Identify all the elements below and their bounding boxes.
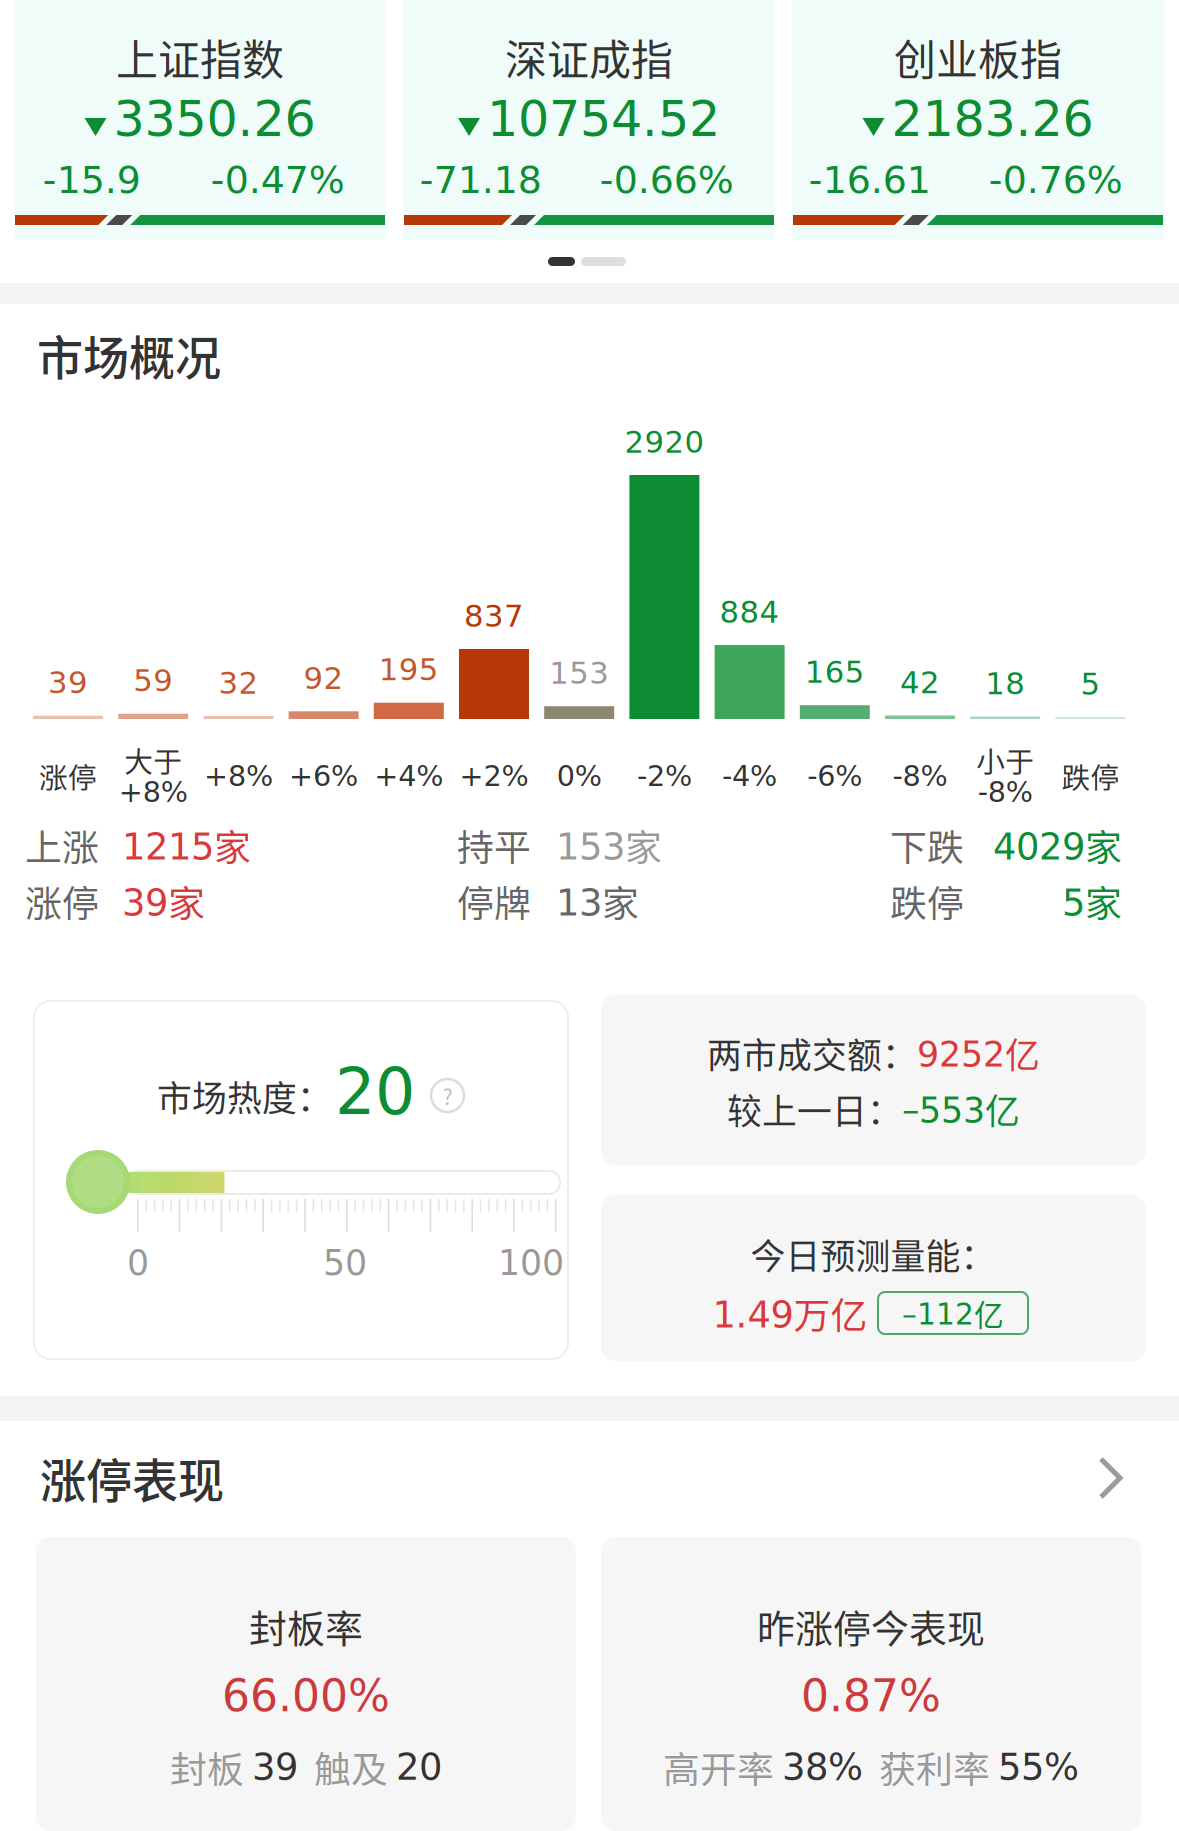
- staticText: 153家: [556, 818, 662, 872]
- staticText: +8%: [204, 759, 273, 793]
- staticText: 上涨: [25, 818, 99, 872]
- staticText: 10754.52: [487, 90, 720, 148]
- staticText: 4029家: [993, 818, 1122, 872]
- staticText: 0%: [557, 759, 602, 793]
- staticText: +2%: [459, 759, 528, 793]
- staticText: 5: [1080, 666, 1100, 702]
- button[interactable]: 市场热度：: [0, 0, 1179, 1831]
- staticText: 高开率: [663, 1740, 782, 1794]
- staticText: -0.47%: [211, 158, 345, 202]
- staticText: 32: [218, 665, 258, 701]
- staticText: -4%: [722, 759, 777, 793]
- staticText: 获利率: [863, 1740, 998, 1794]
- staticText: 39: [48, 665, 88, 701]
- staticText: 持平: [457, 818, 531, 872]
- staticText: 较上一日：: [727, 1084, 902, 1134]
- staticText: 153: [549, 655, 609, 691]
- staticText: 昨涨停今表现: [757, 1599, 985, 1653]
- staticText: +6%: [289, 759, 358, 793]
- staticText: 1215家: [122, 818, 251, 872]
- staticText: 涨停: [39, 755, 97, 797]
- staticText: 2183.26: [891, 90, 1093, 148]
- staticText: 66.00%: [222, 1670, 390, 1722]
- staticText: -6%: [807, 759, 862, 793]
- staticText: -71.18: [420, 158, 542, 202]
- staticText: 大于: [124, 739, 182, 781]
- staticText: –553亿: [902, 1084, 1020, 1134]
- staticText: 上证指数: [116, 27, 284, 87]
- staticText: 39: [252, 1745, 298, 1788]
- button[interactable]: 涨停表现: [0, 0, 1179, 1831]
- staticText: 0.87%: [801, 1670, 941, 1722]
- staticText: 今日预测量能：: [750, 1229, 995, 1279]
- staticText: 涨停: [25, 874, 99, 928]
- staticText: -0.66%: [600, 158, 734, 202]
- staticText: -2%: [637, 759, 692, 793]
- staticText: 下跌: [890, 818, 964, 872]
- staticText: 停牌: [457, 874, 531, 928]
- staticText: 小于: [976, 739, 1034, 781]
- button[interactable]: 两市成交额：: [0, 0, 1179, 1831]
- button[interactable]: 昨涨停今表现: [0, 0, 1179, 1831]
- staticText: 20: [396, 1745, 442, 1788]
- staticText: -0.76%: [989, 158, 1123, 202]
- staticText: +8%: [119, 775, 188, 809]
- staticText: 市场热度：: [157, 1071, 332, 1121]
- staticText: 195: [379, 652, 439, 688]
- staticText: 20: [335, 1055, 415, 1129]
- staticText: 跌停: [890, 874, 964, 928]
- staticText: 92: [304, 660, 344, 696]
- staticText: 深证成指: [505, 27, 673, 87]
- staticText: 55%: [998, 1745, 1079, 1788]
- staticText: 38%: [782, 1745, 863, 1788]
- button[interactable]: 上证指数: [14, 0, 386, 240]
- staticText: 165: [805, 654, 865, 690]
- staticText: 50: [323, 1243, 367, 1283]
- staticText: 13家: [556, 874, 639, 928]
- staticText: 封板率: [249, 1599, 363, 1653]
- staticText: 2920: [624, 424, 704, 460]
- staticText: -16.61: [809, 158, 931, 202]
- button[interactable]: 今日预测量能：: [0, 0, 1179, 1831]
- staticText: 39家: [122, 874, 205, 928]
- staticText: 837: [464, 598, 524, 634]
- staticText: -8%: [892, 759, 947, 793]
- staticText: 0: [127, 1243, 149, 1283]
- staticText: 884: [720, 594, 780, 630]
- staticText: +4%: [374, 759, 443, 793]
- staticText: 创业板指: [894, 27, 1062, 87]
- staticText: -15.9: [43, 158, 141, 202]
- button[interactable]: 创业板指: [792, 0, 1164, 240]
- staticText: -8%: [978, 775, 1033, 809]
- staticText: 59: [133, 663, 173, 699]
- staticText: 3350.26: [113, 90, 315, 148]
- staticText: 两市成交额：: [707, 1028, 917, 1078]
- staticText: 100: [498, 1243, 564, 1283]
- button[interactable]: 封板率: [0, 0, 1179, 1831]
- staticText: 1.49万亿: [712, 1286, 867, 1340]
- staticText: 5家: [1062, 874, 1122, 928]
- button[interactable]: 深证成指: [403, 0, 775, 240]
- staticText: 9252亿: [917, 1028, 1040, 1078]
- staticText: 市场概况: [37, 322, 221, 388]
- staticText: 18: [985, 666, 1025, 701]
- staticText: 触及: [298, 1740, 396, 1794]
- staticText: 涨停表现: [40, 1445, 224, 1511]
- staticText: 封板: [170, 1740, 252, 1794]
- staticText: 跌停: [1061, 755, 1119, 797]
- staticText: ?: [442, 1080, 452, 1111]
- staticText: –112亿: [902, 1291, 1004, 1334]
- staticText: 42: [900, 665, 940, 700]
